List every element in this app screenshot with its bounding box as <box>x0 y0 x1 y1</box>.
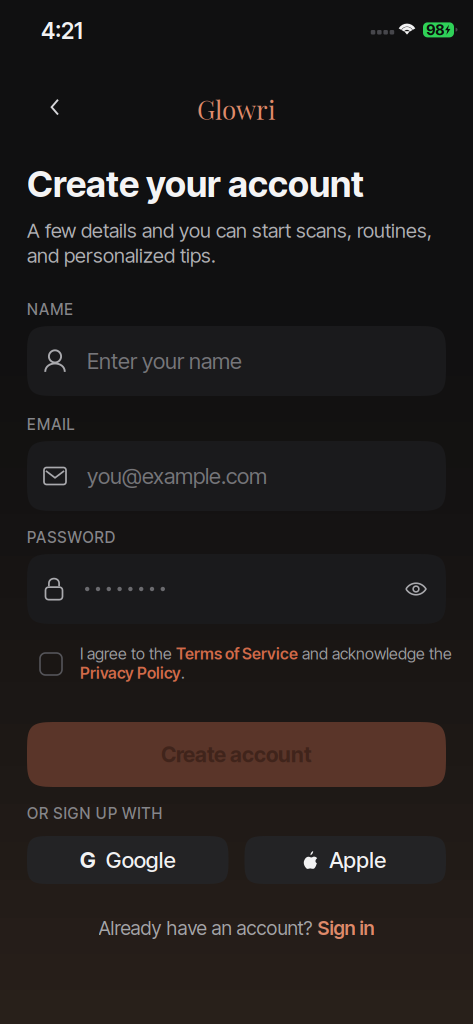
staticText: PASSWORD <box>27 528 115 547</box>
button[interactable]: Agree to terms <box>40 653 62 675</box>
staticText: OR SIGN UP WITH <box>27 804 162 823</box>
staticText: and personalized tips. <box>27 243 216 268</box>
button[interactable]: Show password <box>405 581 427 597</box>
button[interactable]: Apple <box>244 836 446 884</box>
staticText: 4:21 <box>41 17 83 44</box>
staticText: Glowri <box>197 92 276 126</box>
staticText: Already have an account? <box>98 916 317 940</box>
staticText: 98 <box>426 21 444 39</box>
staticText: Enter your name <box>87 348 242 374</box>
staticText: G <box>80 847 96 873</box>
staticText: I agree to the Terms of Service and ackn… <box>80 644 452 683</box>
staticText: NAME <box>27 300 73 319</box>
staticText: Sign in <box>317 916 374 940</box>
staticText: Create account <box>161 742 312 767</box>
button[interactable]: G <box>27 836 228 884</box>
staticText: you@example.com <box>87 463 267 489</box>
button[interactable]: Create account <box>27 722 446 787</box>
staticText: Google <box>106 847 176 873</box>
button[interactable]: Back <box>37 89 73 125</box>
staticText: EMAIL <box>27 415 74 434</box>
button[interactable]: I agree to the Terms of Service and ackn… <box>80 644 458 686</box>
staticText: Apple <box>329 847 386 873</box>
button[interactable]: Sign in <box>317 916 374 940</box>
staticText: Create your account <box>27 162 364 206</box>
staticText: A few details and you can start scans, r… <box>27 218 432 243</box>
